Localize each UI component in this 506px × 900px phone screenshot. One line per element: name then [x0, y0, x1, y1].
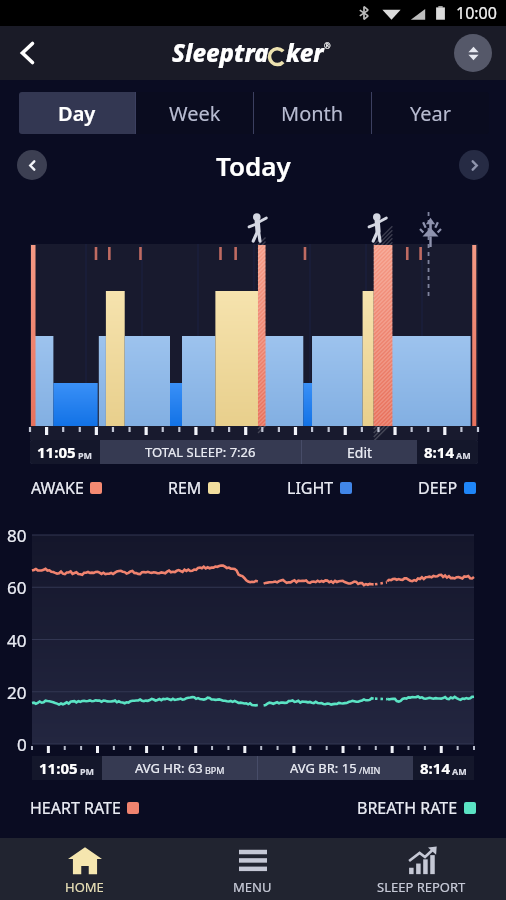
staticText: HEART RATE	[30, 797, 121, 819]
button[interactable]: Week	[136, 92, 253, 134]
button[interactable]: Expand	[454, 34, 492, 72]
button[interactable]: AWAKE	[31, 477, 102, 499]
staticText: DEEP	[418, 477, 458, 499]
staticText: 8:14	[420, 758, 450, 778]
staticText: REM	[168, 477, 202, 499]
button[interactable]: Back	[4, 29, 52, 77]
staticText: 8:14	[424, 442, 454, 462]
staticText: AVG HR: 63	[135, 759, 203, 777]
button[interactable]: Day	[19, 92, 135, 134]
button[interactable]: DEEP	[418, 477, 476, 499]
staticText: SLEEP REPORT	[377, 878, 466, 896]
staticText: AVG BR: 15	[290, 759, 357, 777]
staticText: TOTAL SLEEP: 7:26	[145, 443, 256, 461]
staticText: Week	[169, 100, 221, 127]
button[interactable]: Month	[254, 92, 371, 134]
button[interactable]: Next day	[459, 150, 489, 180]
staticText: 60	[7, 576, 27, 598]
button[interactable]: MENU	[168, 838, 337, 900]
button[interactable]: BREATH RATE	[357, 797, 476, 819]
staticText: AM	[456, 449, 471, 461]
button[interactable]: LIGHT	[287, 477, 352, 499]
staticText: 10:00	[456, 2, 497, 24]
staticText: Edit	[347, 443, 373, 462]
staticText: Month	[281, 100, 344, 127]
staticText: 11:05	[37, 442, 76, 462]
staticText: 0	[17, 733, 27, 755]
staticText: ker	[286, 36, 324, 69]
staticText: 80	[7, 524, 27, 546]
staticText: PM	[80, 765, 95, 777]
staticText: Day	[58, 100, 96, 127]
staticText: HOME	[65, 878, 104, 896]
staticText: AWAKE	[31, 477, 84, 499]
button[interactable]: Edit	[302, 440, 417, 464]
button[interactable]: REM	[168, 477, 220, 499]
staticText: Today	[216, 148, 291, 183]
staticText: MENU	[233, 878, 272, 896]
staticText: Year	[410, 100, 452, 127]
staticText: 11:05	[39, 758, 78, 778]
staticText: PM	[78, 449, 93, 461]
staticText: ®	[324, 40, 331, 51]
button[interactable]: SLEEP REPORT	[337, 838, 506, 900]
staticText: LIGHT	[287, 477, 334, 499]
staticText: Sleeptra	[172, 36, 269, 69]
staticText: /MIN	[359, 764, 381, 776]
button[interactable]: HEART RATE	[30, 797, 139, 819]
staticText: BPM	[205, 764, 225, 776]
staticText: BREATH RATE	[357, 797, 458, 819]
staticText: 40	[7, 629, 27, 651]
staticText: AM	[452, 765, 467, 777]
button[interactable]: Previous day	[17, 150, 47, 180]
button[interactable]: HOME	[0, 838, 168, 900]
staticText: 20	[7, 681, 27, 703]
button[interactable]: Year	[372, 92, 489, 134]
